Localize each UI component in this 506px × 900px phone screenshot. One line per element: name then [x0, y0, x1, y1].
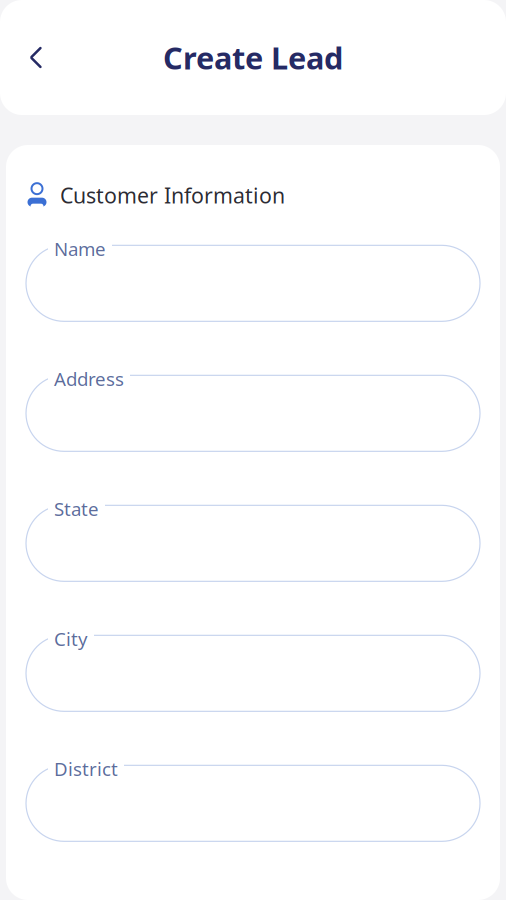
staticText: Address [54, 366, 124, 391]
staticText: City [54, 626, 88, 651]
staticText: Customer Information [60, 181, 285, 209]
staticText: State [54, 496, 99, 521]
staticText: District [54, 756, 118, 781]
staticText: Create Lead [163, 37, 343, 78]
button[interactable]: Back [14, 35, 58, 79]
staticText: Name [54, 236, 106, 261]
